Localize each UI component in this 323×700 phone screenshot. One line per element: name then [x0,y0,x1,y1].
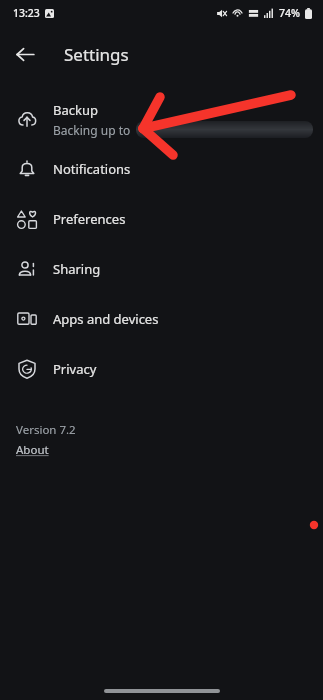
button[interactable]: Notifications [0,144,323,194]
button[interactable]: Sharing [0,244,323,294]
staticText: Backup [53,101,98,119]
button[interactable]: About [16,442,49,458]
staticText: Preferences [53,210,126,228]
staticText: Notifications [53,160,131,178]
staticText: About [16,442,49,458]
staticText: 74% [279,6,300,20]
staticText: Version 7.2 [16,422,76,438]
staticText: Privacy [53,360,97,378]
staticText: Sharing [53,260,101,278]
button[interactable]: Back [9,38,41,70]
staticText: Backing up to [53,122,131,138]
button[interactable]: Preferences [0,194,323,244]
button[interactable]: Apps and devices [0,294,323,344]
button[interactable]: Backup [0,94,323,144]
staticText: Settings [64,43,129,66]
staticText: 13:23 [13,6,40,20]
button[interactable]: Privacy [0,344,323,394]
staticText: Apps and devices [53,310,159,328]
